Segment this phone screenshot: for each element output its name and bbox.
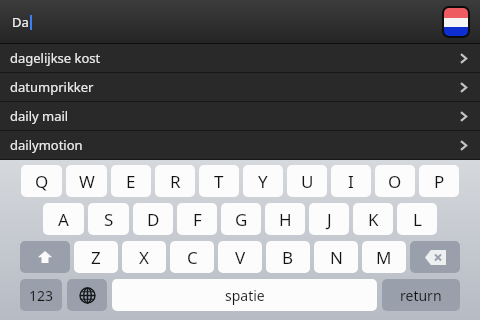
button[interactable]: I <box>331 165 371 197</box>
button[interactable]: A <box>43 203 84 235</box>
staticText: A <box>58 208 69 231</box>
button[interactable]: N <box>314 241 358 273</box>
button[interactable]: L <box>397 203 437 235</box>
button[interactable]: F <box>177 203 217 235</box>
staticText: L <box>413 208 422 231</box>
staticText: dailymotion <box>10 136 83 154</box>
button[interactable]: S <box>88 203 129 235</box>
staticText: W <box>79 170 95 193</box>
staticText: Da <box>12 13 29 31</box>
staticText: T <box>214 170 224 193</box>
staticText: datumprikker <box>10 78 94 96</box>
button[interactable]: G <box>221 203 261 235</box>
button[interactable]: Keyboard language: Dutch <box>444 8 468 36</box>
button[interactable]: 123 <box>20 279 62 311</box>
button[interactable]: Delete <box>410 241 460 273</box>
staticText: return <box>400 286 442 305</box>
button[interactable]: H <box>265 203 305 235</box>
button[interactable]: C <box>170 241 214 273</box>
button[interactable]: W <box>66 165 107 197</box>
staticText: Y <box>258 170 268 193</box>
staticText: 123 <box>29 286 54 305</box>
staticText: X <box>139 246 149 269</box>
button[interactable]: Shift <box>20 241 70 273</box>
staticText: P <box>434 170 445 193</box>
staticText: dagelijkse kost <box>10 49 101 67</box>
button[interactable]: Q <box>21 165 62 197</box>
button[interactable]: R <box>155 165 195 197</box>
button[interactable]: B <box>266 241 310 273</box>
staticText: U <box>301 170 314 193</box>
button[interactable]: Z <box>74 241 118 273</box>
button[interactable]: Y <box>243 165 283 197</box>
staticText: Z <box>91 246 101 269</box>
staticText: Q <box>35 170 49 193</box>
button[interactable]: E <box>111 165 151 197</box>
button[interactable]: P <box>419 165 459 197</box>
button[interactable]: daily mail <box>0 102 480 130</box>
staticText: daily mail <box>10 107 69 125</box>
button[interactable]: Switch keyboard language <box>67 279 107 311</box>
staticText: K <box>368 208 379 231</box>
button[interactable]: K <box>353 203 393 235</box>
button[interactable]: V <box>218 241 262 273</box>
staticText: E <box>126 170 136 193</box>
staticText: M <box>376 246 392 269</box>
staticText: S <box>104 208 114 231</box>
button[interactable]: O <box>375 165 415 197</box>
staticText: O <box>388 170 402 193</box>
staticText: spatie <box>225 286 265 305</box>
button[interactable]: Da <box>12 0 442 44</box>
staticText: D <box>147 208 160 231</box>
staticText: H <box>279 208 292 231</box>
button[interactable]: D <box>133 203 173 235</box>
button[interactable]: J <box>309 203 349 235</box>
button[interactable]: dagelijkse kost <box>0 44 480 72</box>
button[interactable]: U <box>287 165 327 197</box>
staticText: C <box>187 246 198 269</box>
staticText: I <box>348 170 354 193</box>
staticText: N <box>330 246 343 269</box>
button[interactable]: dailymotion <box>0 131 480 159</box>
staticText: R <box>170 170 181 193</box>
button[interactable]: datumprikker <box>0 73 480 101</box>
button[interactable]: T <box>199 165 239 197</box>
staticText: G <box>235 208 248 231</box>
button[interactable]: return <box>382 279 460 311</box>
button[interactable]: spatie <box>112 279 377 311</box>
staticText: B <box>282 246 294 269</box>
button[interactable]: M <box>362 241 406 273</box>
button[interactable]: X <box>122 241 166 273</box>
staticText: V <box>235 246 246 269</box>
staticText: J <box>327 208 332 231</box>
staticText: F <box>193 208 202 231</box>
